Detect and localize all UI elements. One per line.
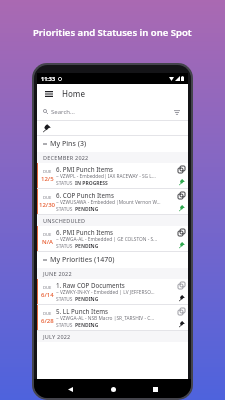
button[interactable]: Pin [179, 179, 185, 185]
staticText: PENDING [75, 296, 99, 302]
staticText: DUE [43, 285, 52, 291]
staticText: 12/30 [39, 201, 56, 209]
staticText: UNSCHEDULED [43, 217, 86, 224]
staticText: 6. COP Punch Items [56, 191, 114, 199]
staticText: DUE [43, 169, 52, 175]
staticText: DUE [43, 232, 52, 238]
button[interactable]: Home [106, 382, 120, 396]
staticText: JUNE 2022 [43, 270, 72, 277]
staticText: Priorities and Statuses in one Spot [33, 26, 192, 39]
staticText: 11:33 [41, 75, 56, 82]
staticText: PENDING [75, 206, 99, 212]
staticText: DECEMBER 2022 [43, 154, 89, 161]
button[interactable]: Pin [179, 205, 185, 211]
staticText: My Pins (3) [50, 139, 87, 149]
button[interactable]: Pinned filter [43, 124, 51, 132]
staticText: My Priorities (1470) [50, 255, 115, 265]
staticText: STATUS [56, 180, 75, 186]
staticText: ~ VZWKY-IN-KY - Embedded | LV JEFFERSO..… [56, 289, 155, 296]
staticText: STATUS [56, 206, 75, 212]
button[interactable]: DUE [37, 305, 188, 331]
button[interactable]: DUE [37, 189, 188, 215]
button[interactable]: Duplicate [178, 229, 185, 236]
button[interactable]: Recent apps [148, 382, 162, 396]
button[interactable]: DUE [37, 226, 188, 252]
staticText: 12/5 [41, 175, 54, 183]
button[interactable]: Pin [179, 321, 185, 327]
staticText: 5. LL Punch Items [56, 307, 109, 315]
staticText: ~ VZWGA-AL - Embedded | GE COLSTON - S..… [56, 236, 157, 243]
button[interactable]: Duplicate [178, 282, 185, 289]
button[interactable]: My Pins (3) [43, 136, 182, 152]
staticText: IN PROGRESS [75, 180, 108, 186]
staticText: ~ VZWGA-AL - NSB Macro |SR_TARSHIV - C..… [56, 315, 155, 322]
button[interactable]: Pin [179, 295, 185, 301]
staticText: 6. PMI Punch Items [56, 228, 114, 236]
button[interactable]: Back [63, 382, 77, 396]
staticText: 6/14 [41, 291, 54, 299]
button[interactable]: Duplicate [178, 308, 185, 315]
button[interactable]: Pin [179, 242, 185, 248]
button[interactable]: Duplicate [178, 192, 185, 199]
button[interactable]: Filter [172, 107, 182, 117]
staticText: STATUS [56, 322, 75, 328]
staticText: STATUS [56, 243, 75, 249]
staticText: Search... [51, 108, 75, 116]
button[interactable]: My Priorities (1470) [43, 252, 182, 268]
staticText: STATUS [56, 296, 75, 302]
staticText: DUE [43, 195, 52, 201]
staticText: DUE [43, 311, 52, 317]
button[interactable]: Duplicate [178, 166, 185, 173]
staticText: 6/28 [41, 317, 54, 325]
button[interactable]: DUE [37, 163, 188, 189]
staticText: N/A [42, 238, 53, 246]
staticText: 6. PMI Punch Items [56, 165, 114, 173]
staticText: Home [62, 88, 86, 99]
button[interactable]: Menu [42, 87, 55, 100]
staticText: ~ VZWPL - Embedded| IAX RACEWAY - SG L..… [56, 173, 156, 180]
staticText: 1. Raw COP Documents [56, 281, 125, 289]
staticText: JULY 2022 [43, 333, 71, 340]
button[interactable]: Search... [43, 103, 182, 120]
button[interactable]: DUE [37, 279, 188, 305]
staticText: PENDING [75, 243, 99, 249]
staticText: ~ VZWUSAWA - Embedded |Mount Vernon W... [56, 199, 161, 206]
staticText: PENDING [75, 322, 99, 328]
